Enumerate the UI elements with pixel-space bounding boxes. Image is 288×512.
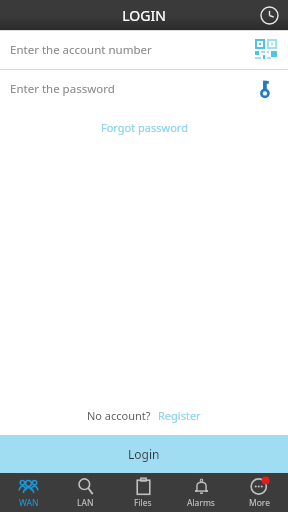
button[interactable]: Enter the account number action: [252, 36, 280, 64]
button[interactable]: Files: [114, 473, 172, 512]
staticText: Enter the password: [10, 81, 252, 97]
button[interactable]: Register: [158, 408, 201, 423]
staticText: Enter the account number: [10, 42, 252, 58]
button[interactable]: Login: [0, 435, 288, 473]
staticText: WAN: [19, 497, 39, 509]
button[interactable]: More: [230, 473, 288, 512]
button[interactable]: Alarms: [172, 473, 230, 512]
button[interactable]: Enter the password: [0, 70, 288, 108]
staticText: No account?: [87, 408, 151, 423]
button[interactable]: Enter the account number: [0, 31, 288, 69]
staticText: Forgot password: [101, 120, 188, 135]
button[interactable]: LAN: [57, 473, 114, 512]
staticText: Alarms: [187, 497, 215, 509]
staticText: LOGIN: [122, 6, 166, 25]
button[interactable]: History: [256, 2, 282, 28]
staticText: More: [249, 497, 270, 509]
staticText: Register: [158, 408, 201, 423]
staticText: LAN: [77, 497, 94, 509]
staticText: Login: [128, 446, 160, 462]
button[interactable]: Forgot password: [0, 108, 288, 146]
button[interactable]: Enter the password action: [252, 75, 280, 103]
staticText: Files: [134, 497, 152, 509]
button[interactable]: WAN: [0, 473, 57, 512]
